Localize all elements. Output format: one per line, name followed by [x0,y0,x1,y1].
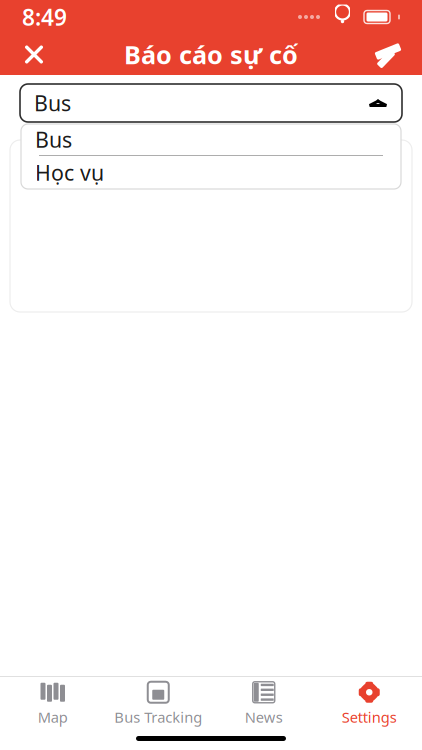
staticText: Bus [35,125,72,154]
button[interactable]: News [211,673,316,731]
button[interactable]: Settings [316,673,422,731]
staticText: Bus [34,89,71,117]
staticText: Settings [342,707,397,727]
staticText: Học vụ [35,158,104,187]
staticText: Báo cáo sự cố [124,38,298,71]
staticText: 8:49 [22,2,67,32]
staticText: Bus Tracking [114,707,202,727]
button[interactable]: Send [366,34,410,74]
button[interactable]: Bus Tracking [105,673,211,731]
button[interactable]: Map [0,673,105,731]
staticText: News [245,707,283,727]
button[interactable]: Học vụ [21,156,401,189]
button[interactable]: Bus [21,124,401,155]
staticText: Map [38,707,68,727]
button[interactable]: Bus [20,84,402,122]
button[interactable]: Close [12,34,56,74]
